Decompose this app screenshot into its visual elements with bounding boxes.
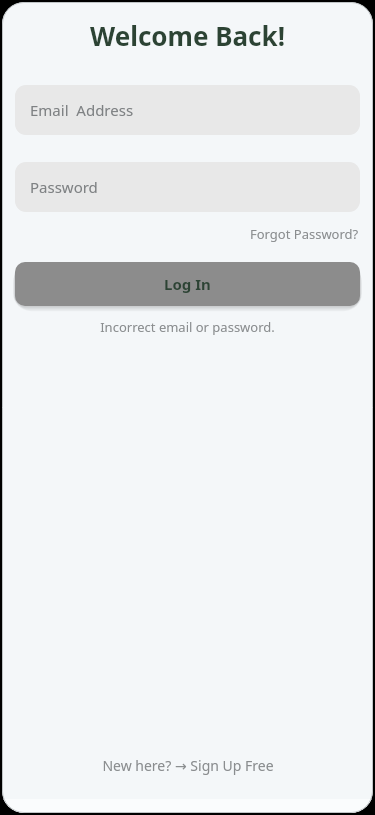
staticText: New here? → Sign Up Free: [102, 756, 274, 775]
button[interactable]: Password: [15, 162, 360, 212]
button[interactable]: Forgot Password?: [250, 223, 373, 245]
staticText: Welcome Back!: [2, 18, 373, 53]
staticText: Incorrect email or password.: [2, 318, 373, 336]
staticText: Password: [30, 177, 98, 197]
button[interactable]: Email Address: [15, 85, 360, 135]
staticText: Email Address: [30, 100, 134, 120]
button[interactable]: New here? → Sign Up Free: [86, 750, 290, 781]
staticText: Forgot Password?: [250, 225, 359, 243]
button[interactable]: Log In: [15, 262, 360, 306]
staticText: Log In: [164, 274, 211, 294]
